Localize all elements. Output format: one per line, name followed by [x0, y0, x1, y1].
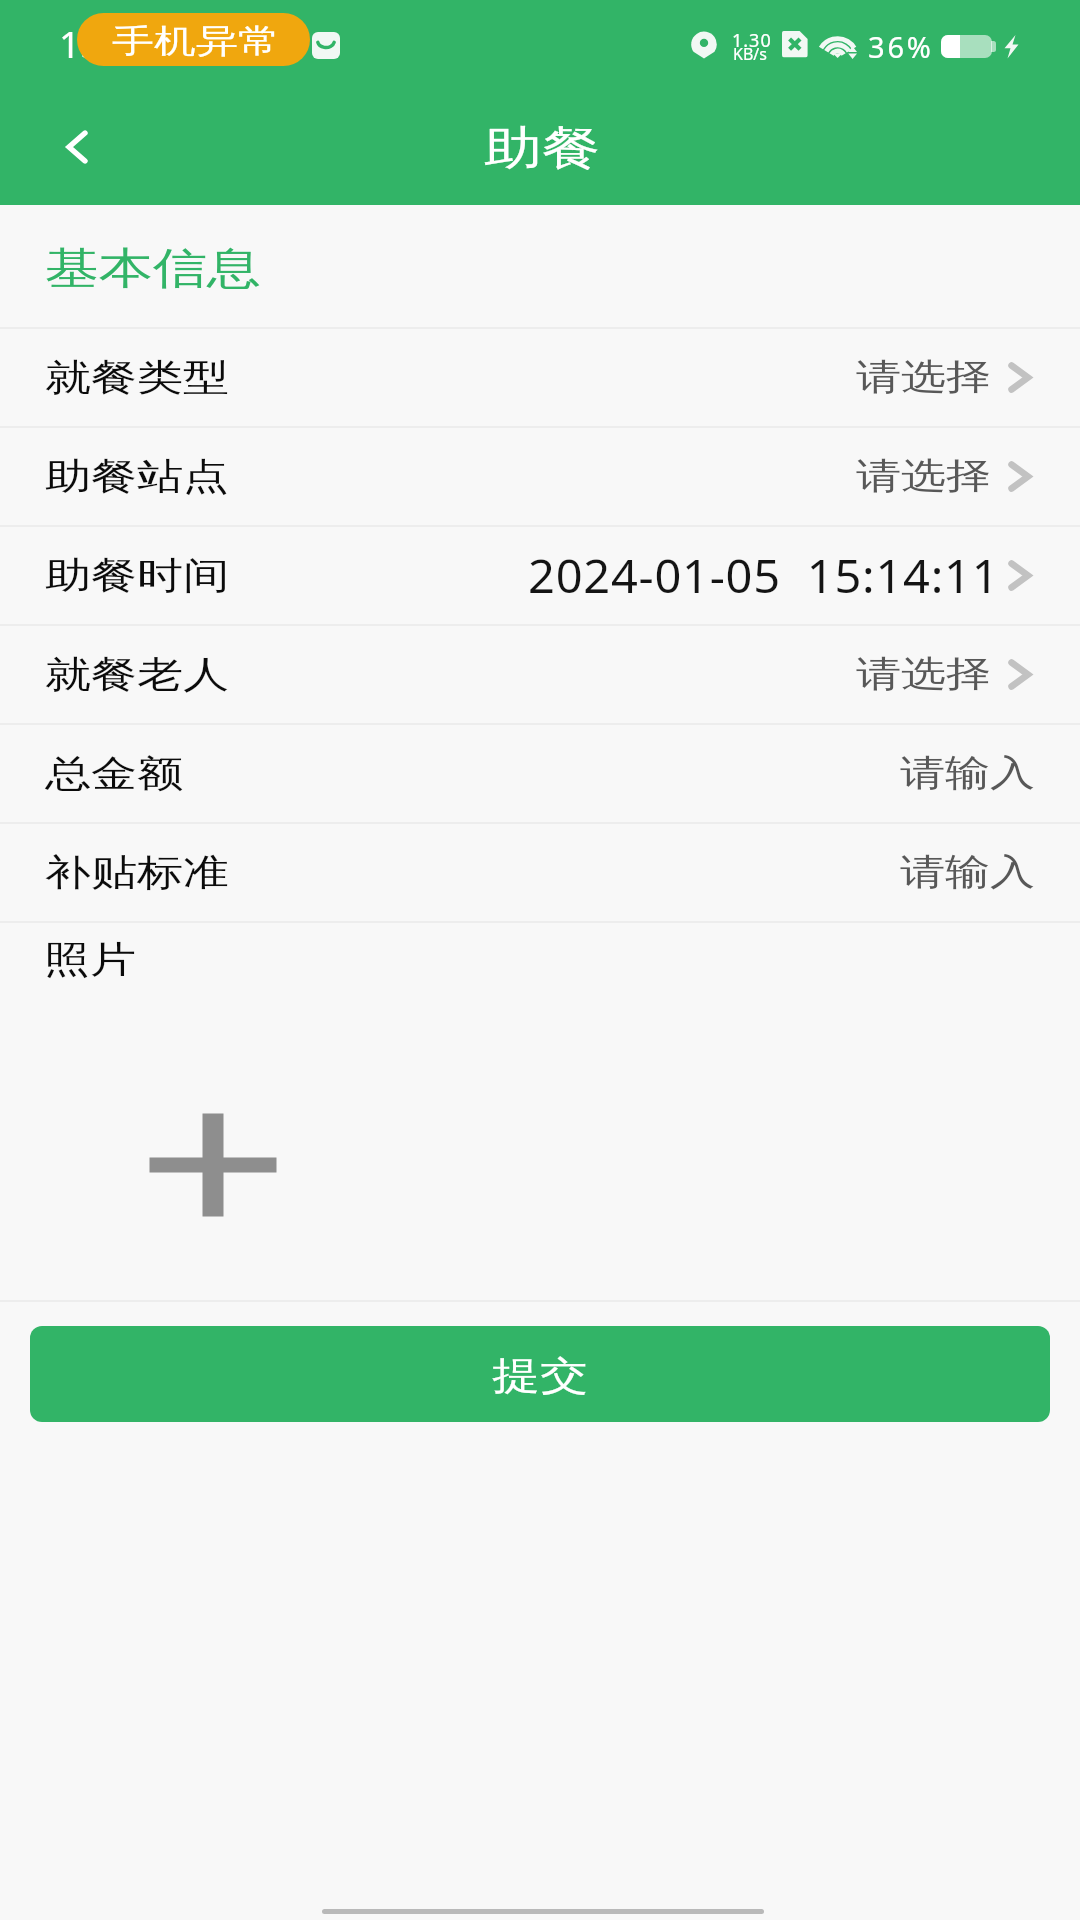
staticText: 请输入: [900, 751, 1035, 796]
button[interactable]: 总金额: [0, 725, 1080, 822]
staticText: 请选择: [856, 355, 991, 400]
button[interactable]: 补贴标准: [0, 824, 1080, 921]
staticText: KB/s: [733, 43, 767, 65]
staticText: 手机异常: [112, 21, 280, 62]
staticText: 请选择: [856, 454, 991, 499]
button[interactable]: 助餐时间: [0, 527, 1080, 624]
staticText: 提交: [492, 1352, 588, 1400]
staticText: 照片: [44, 937, 136, 983]
staticText: 补贴标准: [45, 850, 229, 896]
staticText: 15:14: [59, 18, 154, 68]
staticText: 1.30: [732, 28, 772, 53]
staticText: 助餐: [2, 119, 1080, 178]
staticText: 请选择: [856, 652, 991, 697]
staticText: 助餐站点: [45, 454, 229, 500]
staticText: 助餐时间: [45, 553, 229, 599]
staticText: 就餐老人: [45, 652, 229, 698]
staticText: 基本信息: [45, 242, 261, 296]
staticText: 就餐类型: [45, 355, 229, 401]
staticText: 2024-01-05 15:14:11: [528, 546, 1000, 606]
staticText: 请输入: [900, 850, 1035, 895]
button[interactable]: 就餐老人: [0, 626, 1080, 723]
button[interactable]: Add photo: [118, 1070, 308, 1260]
button[interactable]: 助餐站点: [0, 428, 1080, 525]
button[interactable]: 就餐类型: [0, 329, 1080, 426]
button[interactable]: Back: [38, 108, 116, 186]
staticText: 总金额: [45, 751, 183, 797]
button[interactable]: 提交: [30, 1326, 1050, 1422]
staticText: 36%: [868, 27, 934, 66]
